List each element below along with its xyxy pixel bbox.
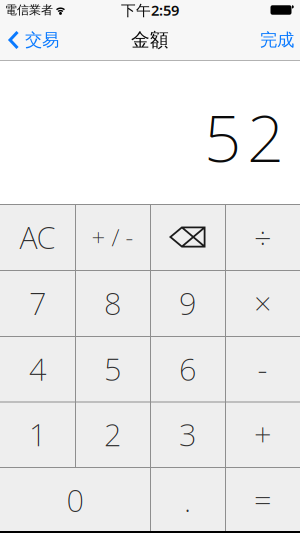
staticText: 交易 — [25, 29, 59, 51]
button[interactable]: 3 — [150, 401, 225, 467]
button[interactable]: 小數點 — [150, 467, 225, 533]
button[interactable]: 除 — [225, 204, 300, 270]
button[interactable]: 等於 — [225, 467, 300, 533]
staticText: 2 — [104, 414, 121, 455]
button[interactable]: 6 — [150, 336, 225, 401]
staticText: 5 — [104, 348, 121, 389]
staticText: 4 — [29, 348, 46, 389]
staticText: 金額 — [131, 28, 169, 51]
button[interactable]: 加 — [225, 401, 300, 467]
staticText: 6 — [179, 348, 196, 389]
staticText: - — [257, 348, 267, 389]
staticText: AC — [19, 217, 55, 257]
staticText: = — [254, 480, 271, 520]
button[interactable]: 刪除 — [150, 204, 225, 270]
staticText: 5 — [204, 93, 241, 180]
button[interactable]: 9 — [150, 270, 225, 336]
staticText: + — [254, 414, 271, 455]
button[interactable]: AC — [0, 204, 75, 270]
staticText: 完成 — [260, 29, 294, 51]
staticText: 下午2:59 — [121, 0, 179, 20]
staticText: 8 — [104, 283, 121, 323]
staticText: 1 — [29, 414, 46, 455]
button[interactable]: 正負號 — [75, 204, 150, 270]
staticText: 3 — [179, 414, 196, 455]
staticText: 7 — [29, 283, 46, 323]
staticText: × — [254, 283, 271, 323]
button[interactable]: 完成 — [260, 29, 300, 51]
button[interactable]: 2 — [75, 401, 150, 467]
button[interactable]: 1 — [0, 401, 75, 467]
button[interactable]: 5 — [75, 336, 150, 401]
staticText: 2 — [247, 93, 284, 180]
button[interactable]: 乘 — [225, 270, 300, 336]
staticText: + / - — [91, 221, 133, 253]
staticText: 9 — [179, 283, 196, 323]
staticText: ÷ — [254, 217, 271, 257]
button[interactable]: 4 — [0, 336, 75, 401]
staticText: . — [184, 480, 191, 520]
button[interactable]: 8 — [75, 270, 150, 336]
button[interactable]: 0 — [0, 467, 150, 533]
staticText: 電信業者 — [5, 3, 53, 17]
button[interactable]: 7 — [0, 270, 75, 336]
staticText: 0 — [66, 480, 83, 520]
button[interactable]: 返回交易 — [0, 29, 59, 51]
button[interactable]: 減 — [225, 336, 300, 401]
